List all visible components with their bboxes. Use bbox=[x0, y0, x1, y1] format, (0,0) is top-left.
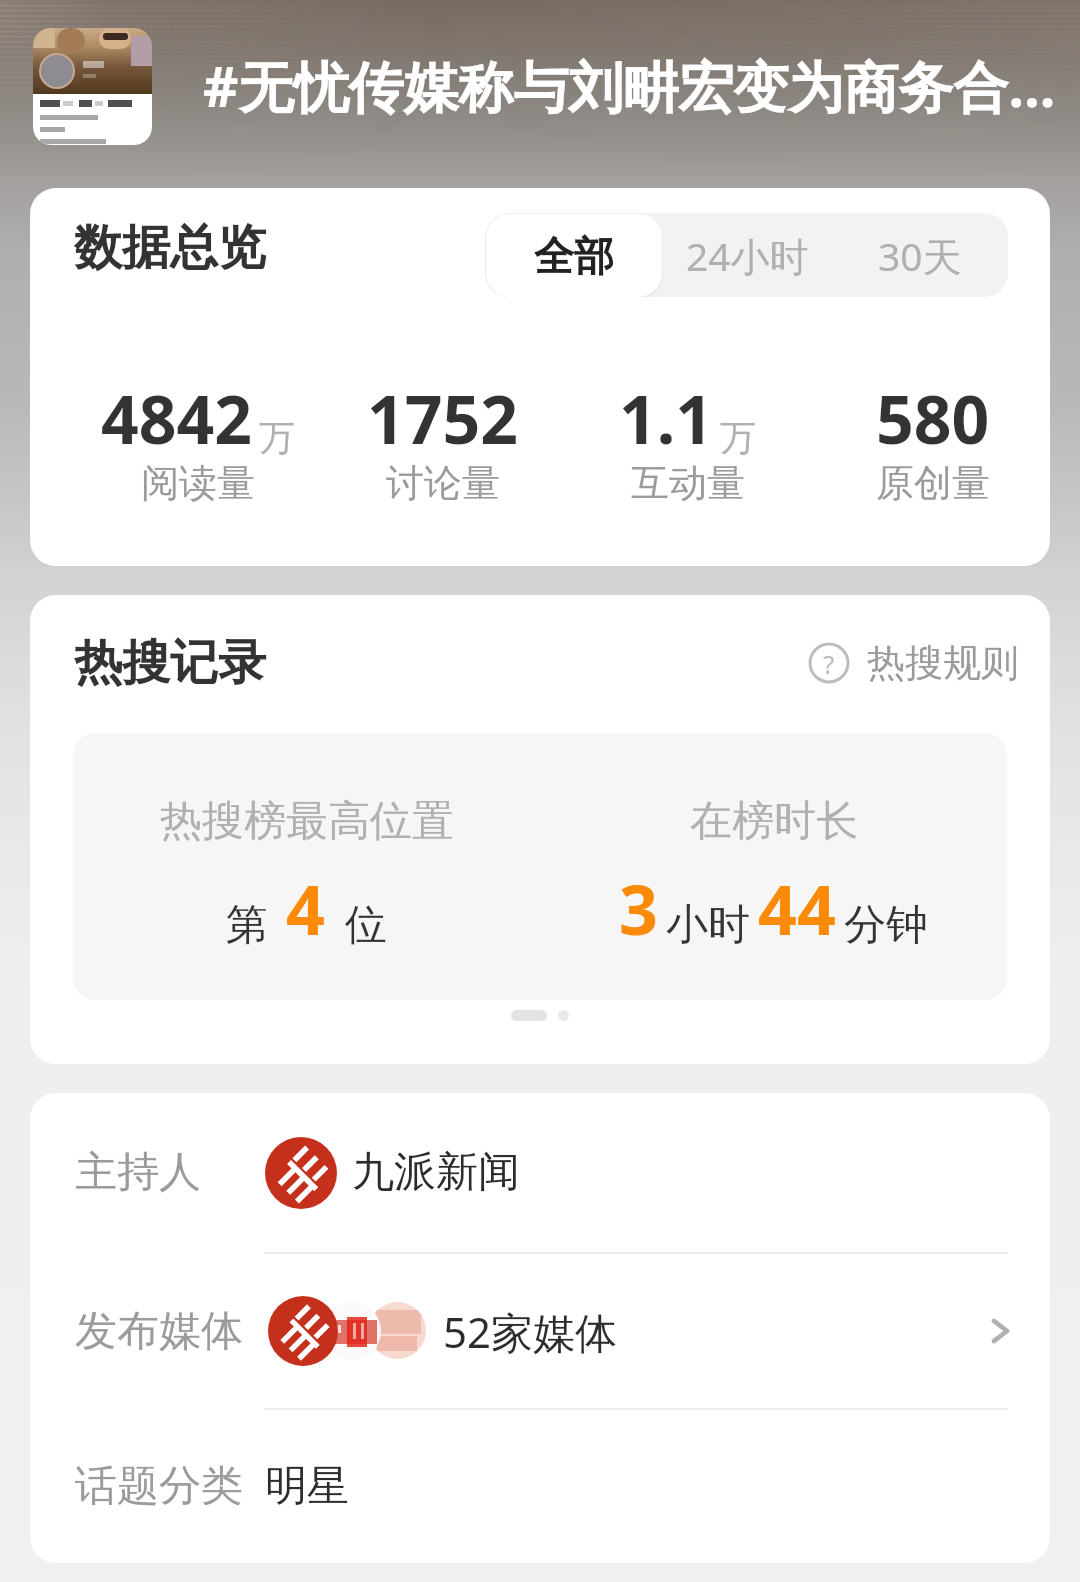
staticText: 热搜榜最高位置 bbox=[160, 795, 454, 848]
staticText: 1.1 bbox=[619, 373, 714, 463]
staticText: 原创量 bbox=[876, 459, 990, 507]
staticText: 小时 bbox=[666, 899, 750, 952]
staticText: 24小时 bbox=[686, 229, 809, 282]
staticText: 4842 bbox=[101, 373, 253, 463]
staticText: 明星 bbox=[265, 1460, 349, 1513]
staticText: 主持人 bbox=[75, 1146, 201, 1199]
button[interactable]: Hot search rules bbox=[808, 639, 1019, 687]
staticText: 讨论量 bbox=[386, 459, 500, 507]
other: Hot search rules bbox=[808, 642, 850, 684]
staticText: 万 bbox=[720, 415, 756, 460]
staticText: 3 bbox=[619, 862, 658, 955]
staticText: 1752 bbox=[367, 373, 519, 463]
staticText: 在榜时长 bbox=[690, 795, 858, 848]
staticText: 30天 bbox=[878, 229, 962, 282]
staticText: 4 bbox=[286, 862, 325, 955]
staticText: 万 bbox=[259, 415, 295, 460]
staticText: 全部 bbox=[534, 231, 614, 281]
staticText: 阅读量 bbox=[141, 459, 255, 507]
staticText: 位 bbox=[345, 899, 387, 952]
button[interactable]: 全部 bbox=[486, 214, 662, 297]
staticText: #无忧传媒称与刘畊宏变为商务合… bbox=[203, 48, 1056, 123]
staticText: 热搜规则 bbox=[867, 639, 1019, 687]
staticText: 发布媒体 bbox=[75, 1305, 243, 1358]
button[interactable]: 24小时 bbox=[662, 213, 832, 297]
button[interactable]: 30天 bbox=[832, 213, 1008, 297]
staticText: 话题分类 bbox=[75, 1460, 243, 1513]
staticText: 52家媒体 bbox=[443, 1303, 618, 1360]
other: More media bbox=[978, 1309, 1022, 1353]
button[interactable]: Profile preview bbox=[33, 28, 152, 145]
staticText: 互动量 bbox=[631, 459, 745, 507]
staticText: 九派新闻 bbox=[352, 1146, 520, 1199]
staticText: 数据总览 bbox=[74, 218, 266, 278]
staticText: 44 bbox=[758, 862, 836, 955]
staticText: 热搜记录 bbox=[74, 633, 266, 693]
button[interactable]: 主持人 bbox=[30, 1093, 1050, 1252]
button[interactable]: 发布媒体 bbox=[30, 1253, 1050, 1409]
staticText: 分钟 bbox=[844, 899, 928, 952]
staticText: 580 bbox=[876, 373, 990, 463]
staticText: 第 bbox=[226, 899, 268, 952]
staticText: ? bbox=[823, 646, 835, 681]
